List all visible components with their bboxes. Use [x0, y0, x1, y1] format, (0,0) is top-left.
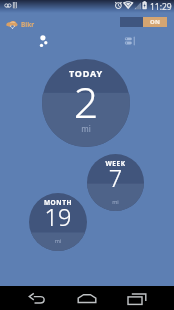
staticText: mi: [42, 123, 130, 134]
button[interactable]: Bikr: [6, 17, 35, 31]
button[interactable]: Home: [71, 286, 103, 310]
staticText: WEEK: [87, 159, 144, 168]
staticText: ON: [150, 18, 161, 26]
staticText: Bikr: [21, 20, 35, 29]
button[interactable]: Show ride list: [122, 34, 138, 48]
button[interactable]: Tracking toggle, on: [120, 17, 167, 27]
button[interactable]: Back: [21, 286, 53, 310]
button[interactable]: TODAY: [42, 59, 130, 147]
staticText: mi: [87, 198, 144, 205]
button[interactable]: Recent apps: [121, 286, 153, 310]
staticText: 2: [42, 72, 130, 131]
button[interactable]: MONTH: [29, 193, 87, 251]
staticText: mi: [29, 237, 87, 244]
staticText: 11:29: [150, 1, 172, 13]
staticText: TODAY: [42, 67, 130, 79]
staticText: 19: [29, 201, 87, 233]
button[interactable]: WEEK: [87, 154, 144, 211]
staticText: 7: [87, 162, 144, 194]
staticText: MONTH: [29, 198, 87, 207]
